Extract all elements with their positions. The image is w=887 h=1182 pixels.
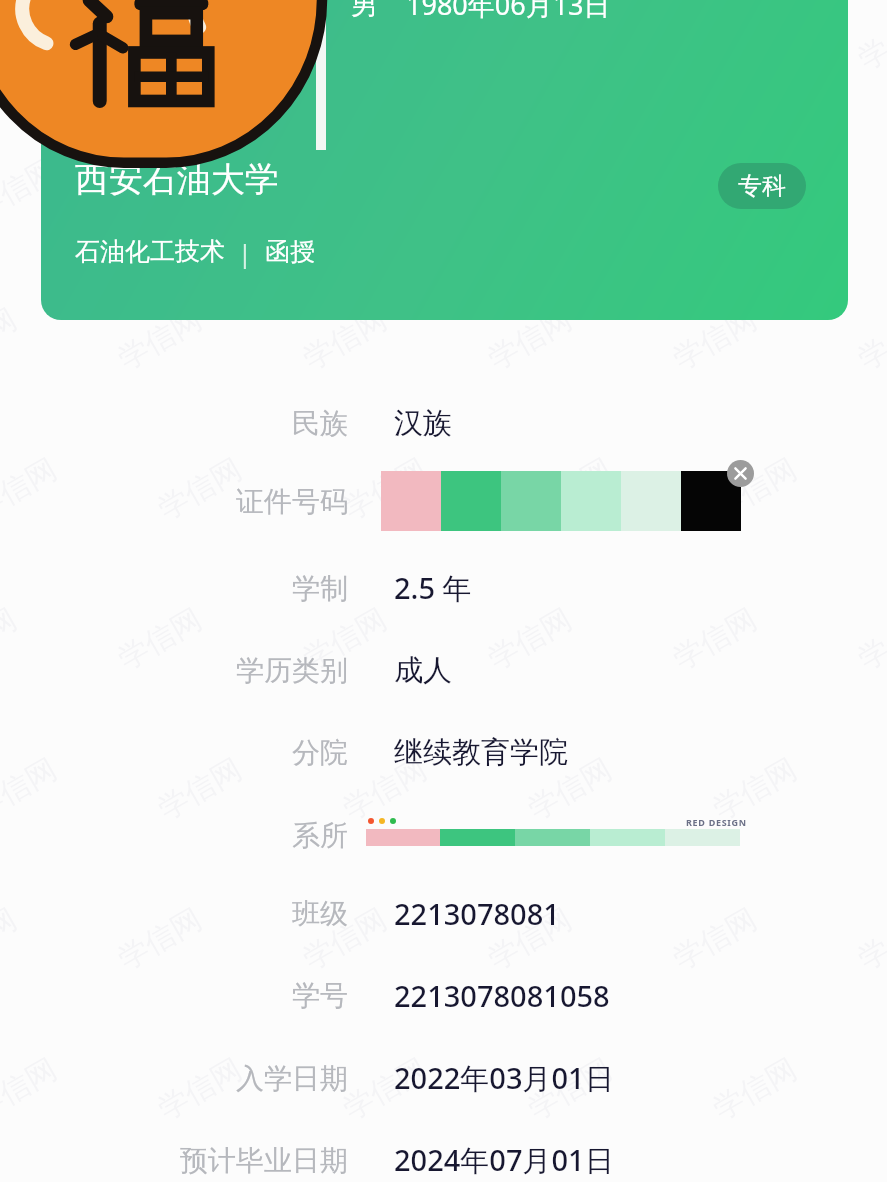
staticText: 分院 — [292, 735, 348, 770]
staticText: 石油化工技术 — [75, 236, 225, 267]
staticText: 学信网 — [706, 150, 803, 228]
button[interactable]: 男 — [41, 0, 848, 320]
staticText: 学信网 — [336, 1050, 433, 1128]
button[interactable]: 学历类别 — [0, 640, 887, 700]
staticText: 学信网 — [336, 450, 433, 528]
staticText: 学信网 — [151, 450, 248, 528]
staticText: 继续教育学院 — [394, 734, 568, 771]
staticText: 学信网 — [111, 0, 208, 78]
staticText: 学信网 — [296, 300, 393, 378]
staticText: 汉族 — [394, 405, 452, 442]
button[interactable]: 预计毕业日期 — [0, 1130, 887, 1182]
staticText: 学信网 — [0, 0, 23, 78]
staticText: 学信网 — [111, 300, 208, 378]
staticText: 学信网 — [666, 300, 763, 378]
staticText: 西安石油大学 — [75, 158, 279, 201]
staticText: 成人 — [394, 652, 452, 689]
staticText: 班级 — [292, 896, 348, 931]
staticText: 学信网 — [521, 450, 618, 528]
staticText: 2022年03月01日 — [394, 1058, 614, 1098]
button[interactable]: 入学日期 — [0, 1048, 887, 1108]
button[interactable]: 学制 — [0, 558, 887, 618]
staticText: 1980年06月13日 — [406, 0, 611, 23]
staticText: 学信网 — [296, 0, 393, 78]
button[interactable]: 系所 — [0, 805, 887, 865]
staticText: 学信网 — [521, 750, 618, 828]
staticText: 学制 — [292, 571, 348, 606]
staticText: 学信网 — [336, 750, 433, 828]
staticText: 学号 — [292, 978, 348, 1013]
button[interactable]: Close — [727, 460, 754, 487]
staticText: 2024年07月01日 — [394, 1140, 614, 1180]
staticText: 预计毕业日期 — [180, 1143, 348, 1178]
staticText: 函授 — [265, 236, 315, 267]
staticText: 2213078081 — [394, 894, 560, 933]
staticText: 民族 — [292, 406, 348, 441]
staticText: 学历类别 — [236, 653, 348, 688]
staticText: 学信网 — [706, 750, 803, 828]
staticText: 2213078081058 — [394, 976, 610, 1015]
staticText: 专科 — [738, 171, 786, 201]
button[interactable]: 学号 — [0, 965, 887, 1025]
staticText: | — [225, 236, 265, 270]
staticText: 男 — [351, 0, 378, 22]
staticText: 学信网 — [706, 450, 803, 528]
staticText: 系所 — [292, 818, 348, 853]
staticText: 学信网 — [151, 150, 248, 228]
staticText: 2.5 年 — [394, 568, 472, 608]
staticText: 入学日期 — [236, 1061, 348, 1096]
staticText: 学信网 — [0, 150, 63, 228]
staticText: 学信网 — [521, 1050, 618, 1128]
staticText: 学信网 — [481, 0, 578, 78]
staticText: RED DESIGN — [686, 816, 747, 828]
button[interactable]: 班级 — [0, 883, 887, 943]
button[interactable]: 民族 — [0, 393, 887, 453]
staticText: 证件号码 — [236, 484, 348, 519]
staticText: 学信网 — [296, 600, 393, 678]
staticText: 学信网 — [481, 900, 578, 978]
staticText: 学信网 — [296, 900, 393, 978]
button[interactable]: 分院 — [0, 722, 887, 782]
staticText: 学信网 — [151, 1050, 248, 1128]
button[interactable]: 证件号码 — [0, 471, 887, 531]
button[interactable]: 专科 — [718, 163, 806, 209]
staticText: 学信网 — [481, 300, 578, 378]
